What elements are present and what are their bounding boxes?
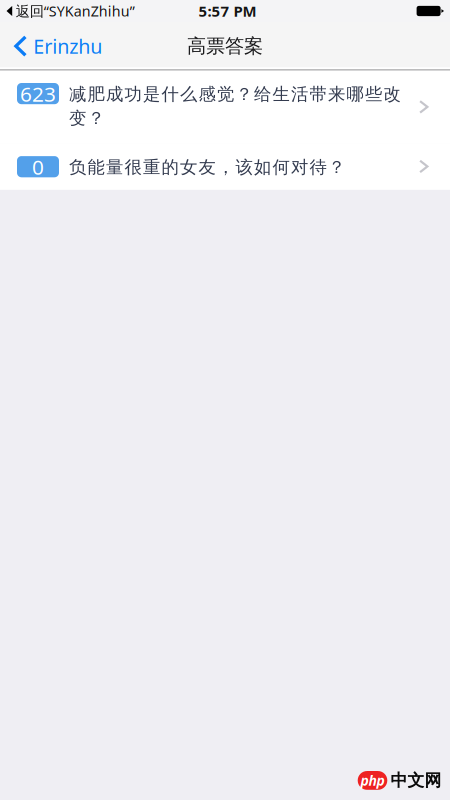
staticText: 5:57 PM — [198, 1, 256, 21]
staticText: 负能量很重的女友，该如何对待？ — [69, 156, 345, 178]
button[interactable]: Erinzhu — [0, 22, 112, 67]
button[interactable]: 返回“SYKanZhihu” — [0, 0, 135, 22]
button[interactable]: 623 — [0, 71, 450, 143]
staticText: 返回“SYKanZhihu” — [16, 1, 135, 21]
staticText: 中文网 — [390, 770, 441, 791]
staticText: 高票答案 — [187, 34, 263, 58]
button[interactable]: 0 — [0, 143, 450, 190]
staticText: 0 — [32, 152, 44, 181]
staticText: 623 — [20, 79, 56, 108]
staticText: 减肥成功是什么感觉？给生活带来哪些改变？ — [69, 83, 400, 129]
staticText: Erinzhu — [33, 33, 102, 60]
staticText: php — [360, 771, 384, 790]
